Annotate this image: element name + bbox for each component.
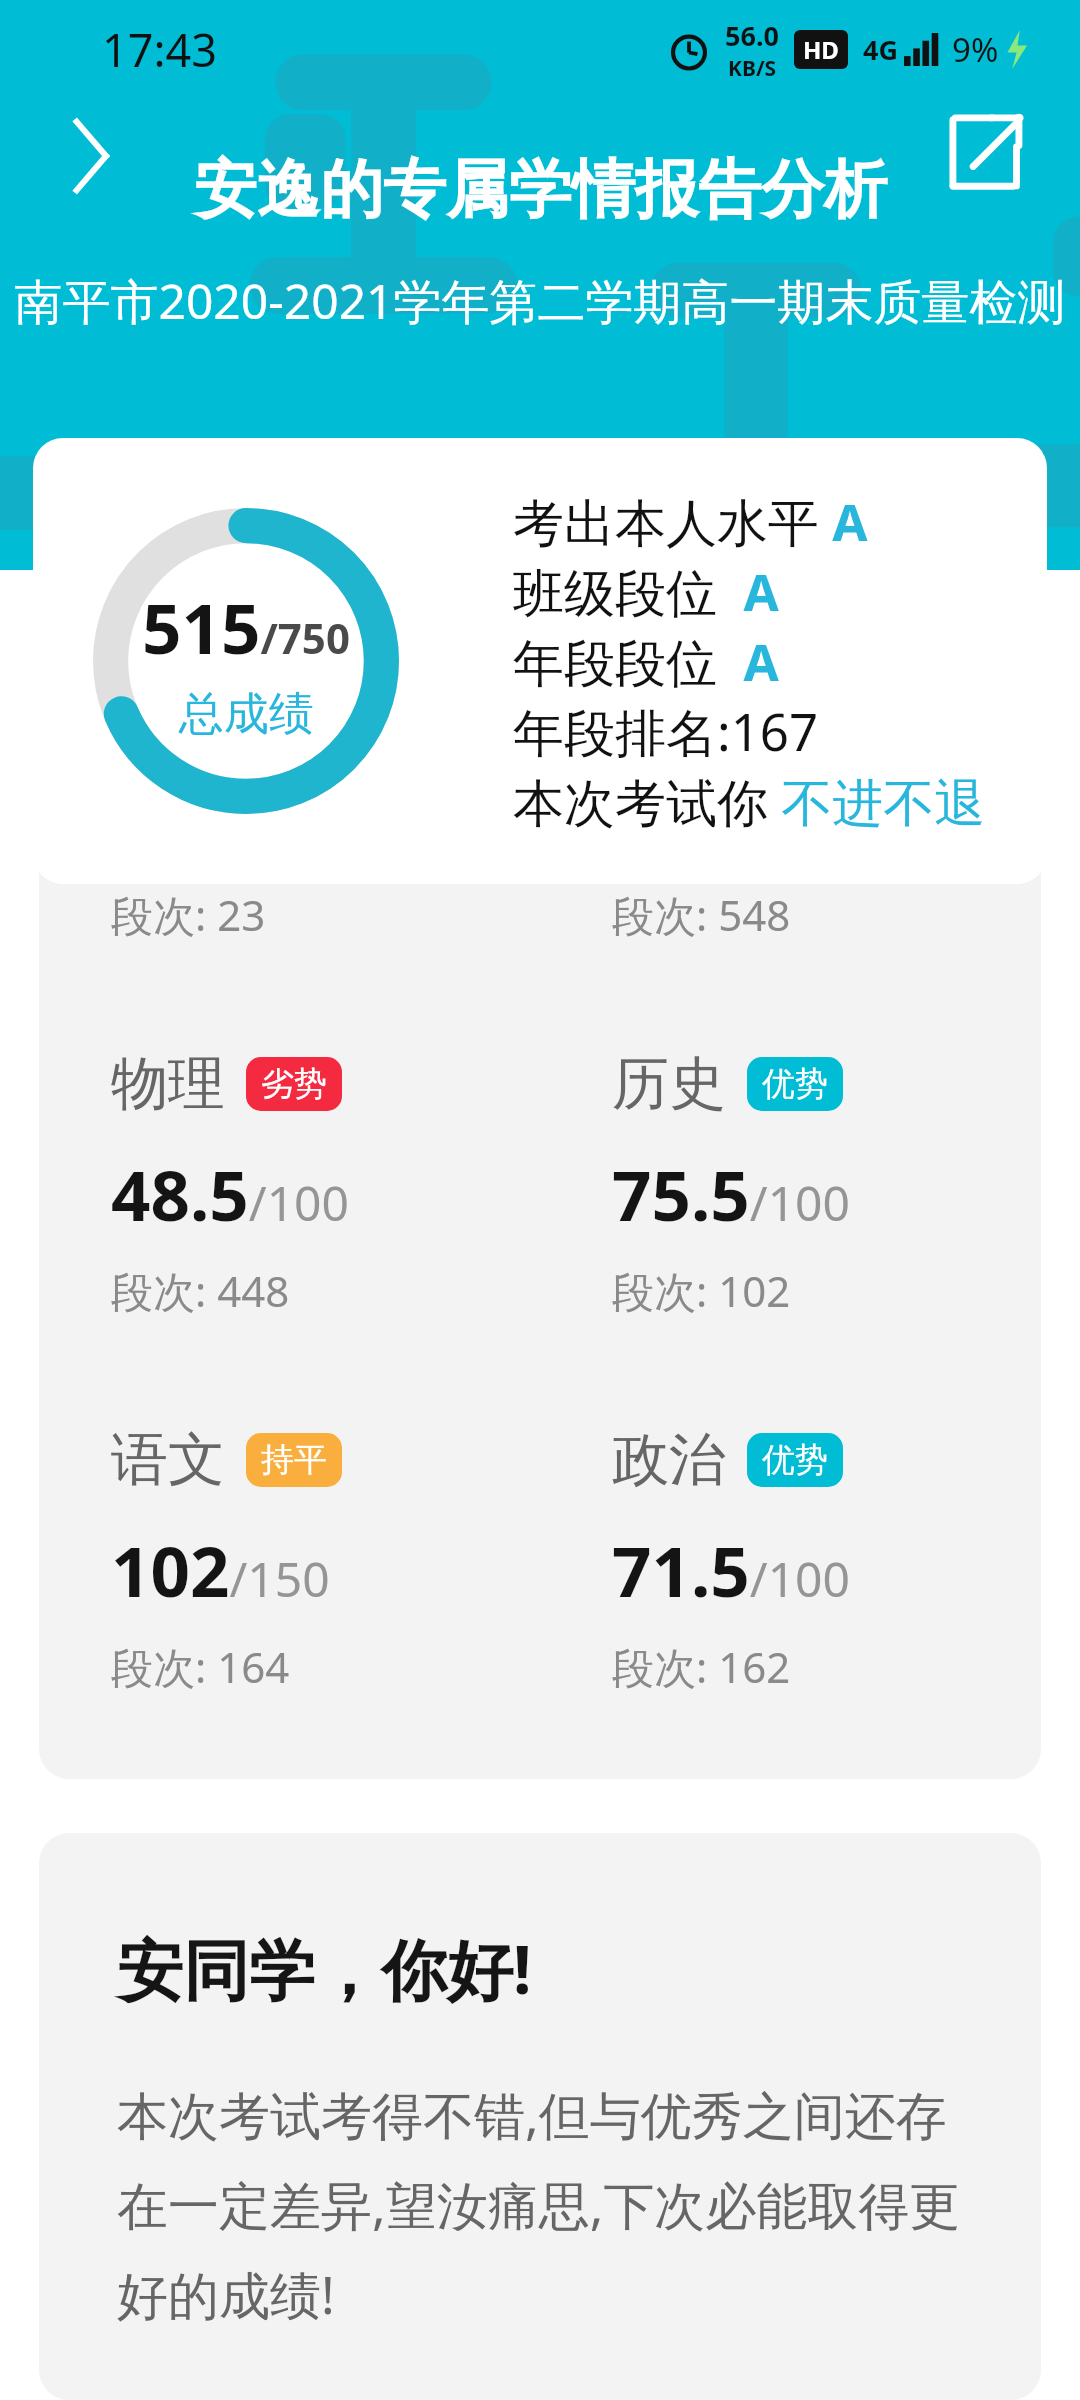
- button[interactable]: 数学: [540, 672, 1041, 943]
- staticText: 段次: 23: [111, 886, 266, 943]
- staticText: 英语: [111, 672, 225, 744]
- staticText: 48.5/100: [111, 1147, 350, 1241]
- staticText: 136.5/150: [111, 771, 389, 865]
- staticText: 515/750: [142, 580, 350, 674]
- staticText: 17:43: [102, 19, 218, 80]
- staticText: 本次考试你 不进不退: [513, 766, 986, 836]
- staticText: 物理: [111, 1048, 225, 1120]
- staticText: 政治: [612, 1424, 726, 1496]
- staticText: 劣势: [762, 687, 828, 729]
- staticText: 本次考试考得不错,但与优秀之间还存在一定差异,望汝痛思,下次必能取得更好的成绩!: [117, 2079, 975, 2329]
- staticText: 数学: [612, 672, 726, 744]
- button[interactable]: 政治: [540, 1424, 1041, 1695]
- button[interactable]: 物理: [39, 1048, 540, 1319]
- staticText: 56.0: [725, 17, 779, 54]
- staticText: 语文: [111, 1424, 225, 1496]
- staticText: 考出本人水平 A: [513, 486, 868, 556]
- button[interactable]: Share: [912, 81, 1056, 225]
- staticText: 段次: 548: [612, 886, 791, 943]
- staticText: 71.5/100: [612, 1523, 851, 1617]
- staticText: 持平: [261, 1439, 327, 1481]
- button[interactable]: 515/750: [33, 438, 1047, 884]
- staticText: 段次: 448: [111, 1262, 290, 1319]
- staticText: 优势: [762, 1063, 828, 1105]
- staticText: 优势: [762, 1439, 828, 1481]
- staticText: 75.5/100: [612, 1147, 851, 1241]
- staticText: HD: [803, 33, 839, 66]
- staticText: 段次: 164: [111, 1638, 290, 1695]
- staticText: 安同学，你好!: [117, 1923, 532, 2013]
- button[interactable]: Back: [18, 84, 162, 228]
- staticText: 年段排名:167: [513, 696, 819, 766]
- staticText: 安逸的专属学情报告分析: [194, 150, 887, 229]
- staticText: 班级段位 A: [513, 556, 779, 626]
- staticText: 段次: 102: [612, 1262, 791, 1319]
- button[interactable]: 语文: [39, 1424, 540, 1695]
- staticText: 劣势: [261, 1063, 327, 1105]
- button[interactable]: 安同学，你好!: [39, 1833, 1041, 2400]
- button[interactable]: 英语: [39, 672, 540, 943]
- staticText: 南平市2020-2021学年第二学期高一期末质量检测: [14, 268, 1066, 334]
- staticText: 年段段位 A: [513, 626, 779, 696]
- staticText: 102/150: [111, 1523, 330, 1617]
- staticText: 总成绩: [179, 686, 314, 743]
- button[interactable]: 历史: [540, 1048, 1041, 1319]
- staticText: 4G: [863, 31, 898, 68]
- staticText: KB/S: [728, 54, 777, 83]
- staticText: 9%: [952, 27, 999, 72]
- staticText: 81/150: [612, 771, 792, 865]
- staticText: 历史: [612, 1048, 726, 1120]
- staticText: 优势: [261, 687, 327, 729]
- staticText: 段次: 162: [612, 1638, 791, 1695]
